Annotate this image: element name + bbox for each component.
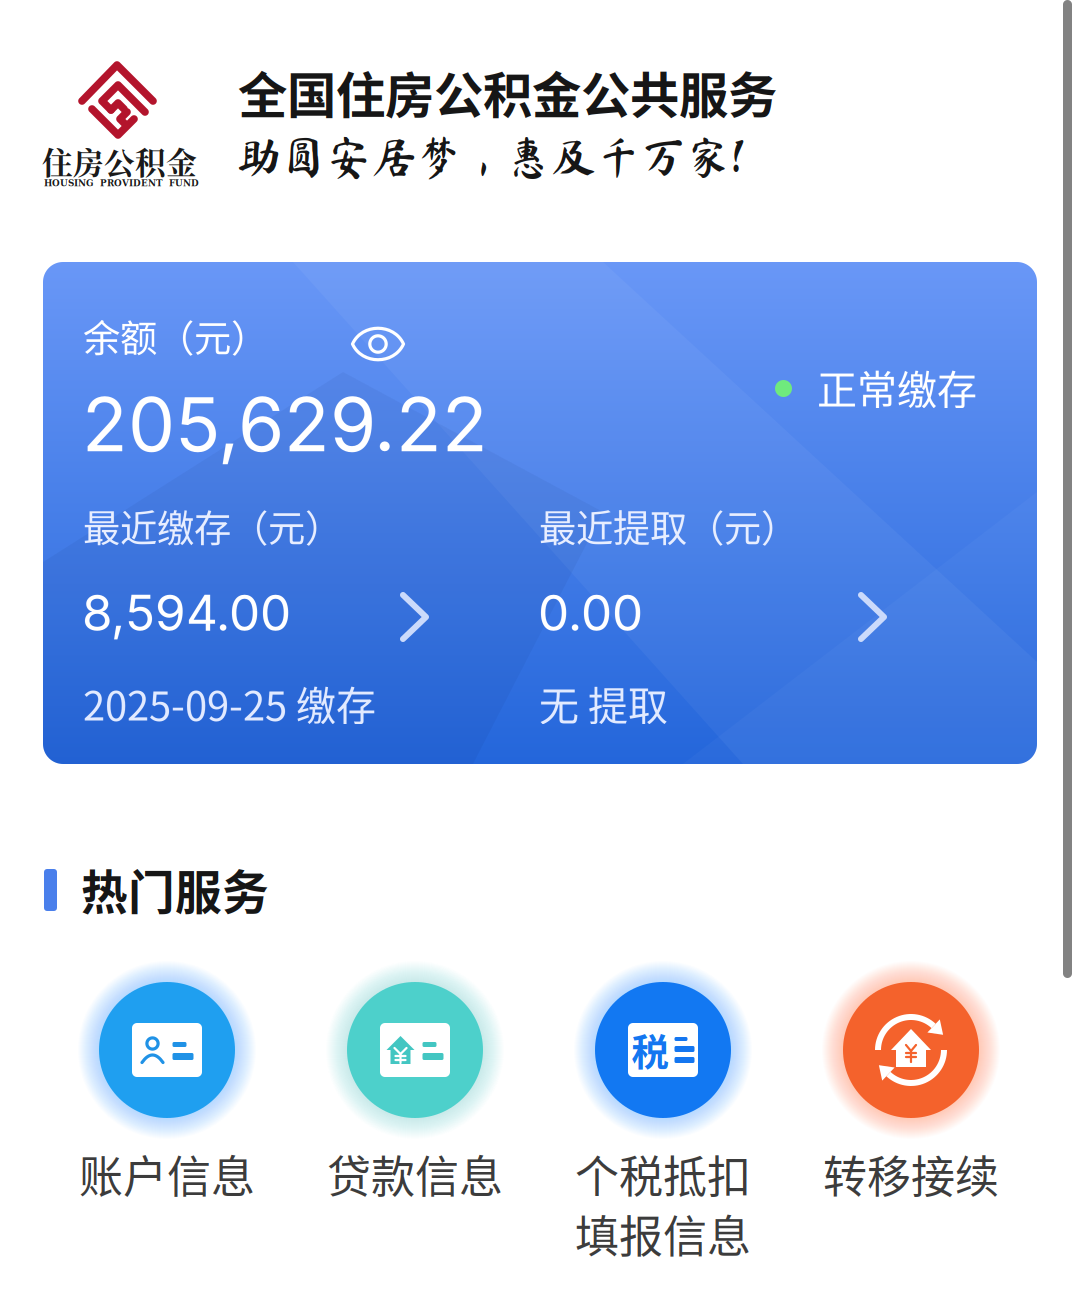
- staticText: 正常缴存: [817, 358, 977, 416]
- staticText: 最近缴存（元）: [83, 499, 342, 553]
- staticText: 贷款信息: [327, 1142, 503, 1206]
- staticText: 热门服务: [81, 855, 269, 923]
- staticText: 2025-09-25 缴存: [83, 674, 376, 732]
- staticText: 税: [631, 1023, 668, 1077]
- staticText: 205,629.22: [82, 379, 488, 469]
- staticText: 无 提取: [539, 674, 668, 732]
- staticText: HOUSING PROVIDENT FUND: [44, 178, 199, 188]
- staticText: 8,594.00: [82, 583, 291, 643]
- staticText: 填报信息: [575, 1202, 751, 1265]
- button[interactable]: 贷款信息: [291, 982, 539, 1206]
- staticText: 住房公积金: [42, 139, 197, 183]
- button[interactable]: 个税抵扣填报信息: [539, 982, 787, 1265]
- button[interactable]: 账户信息: [43, 982, 291, 1206]
- staticText: 转移接续: [823, 1142, 999, 1206]
- staticText: 余额（元）: [83, 309, 268, 363]
- button[interactable]: 转移接续: [787, 982, 1035, 1206]
- staticText: 最近提取（元）: [539, 499, 798, 553]
- staticText: 0.00: [538, 583, 643, 643]
- staticText: 个税抵扣: [575, 1142, 751, 1206]
- staticText: 助圆安居梦，惠及千万家!: [236, 134, 742, 179]
- staticText: 账户信息: [79, 1142, 255, 1206]
- staticText: 全国住房公积金公共服务: [238, 56, 777, 127]
